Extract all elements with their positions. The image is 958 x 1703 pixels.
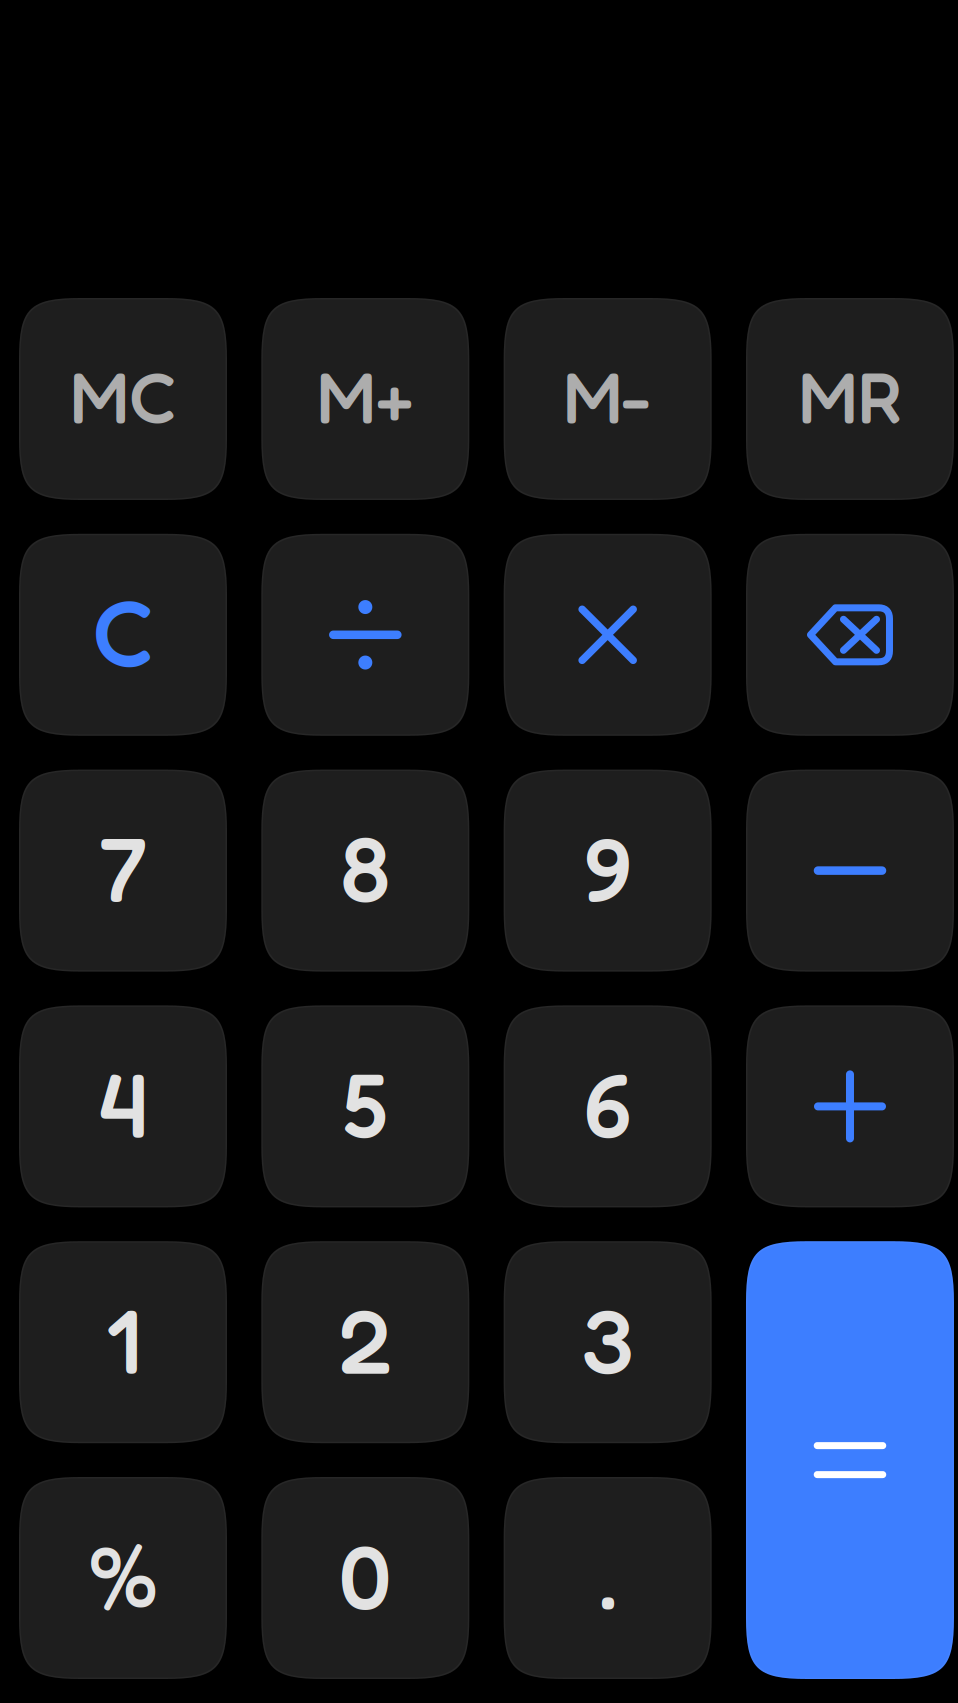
staticText: 8	[340, 813, 390, 922]
staticText: M+	[317, 352, 414, 439]
staticText: 1	[105, 1284, 140, 1394]
button[interactable]: %	[19, 1477, 227, 1679]
staticText: C	[92, 575, 153, 688]
button[interactable]: Plus	[746, 1005, 954, 1207]
button[interactable]: Multiply	[504, 534, 712, 736]
button[interactable]: 4	[19, 1005, 227, 1207]
button[interactable]: Minus	[746, 770, 954, 972]
staticText: MR	[798, 352, 901, 439]
button[interactable]: MR	[746, 298, 954, 500]
staticText: %	[88, 1523, 157, 1627]
button[interactable]: Divide	[261, 534, 469, 736]
button[interactable]: 1	[19, 1241, 227, 1443]
staticText: 0	[339, 1520, 392, 1630]
button[interactable]: Equals	[746, 1241, 954, 1679]
button[interactable]: M+	[261, 298, 469, 500]
staticText: 7	[98, 813, 147, 922]
staticText: 9	[584, 813, 632, 922]
staticText: 4	[98, 1048, 148, 1158]
button[interactable]: Backspace	[746, 534, 954, 736]
staticText: M-	[563, 352, 652, 439]
button[interactable]: .	[504, 1477, 712, 1679]
staticText: 5	[342, 1048, 388, 1158]
button[interactable]: 6	[504, 1005, 712, 1207]
staticText: 2	[339, 1284, 392, 1394]
button[interactable]: 2	[261, 1241, 469, 1443]
staticText: 3	[581, 1284, 634, 1394]
button[interactable]: M-	[504, 298, 712, 500]
button[interactable]: 0	[261, 1477, 469, 1679]
button[interactable]: 9	[504, 770, 712, 972]
staticText: .	[598, 1520, 617, 1630]
button[interactable]: C	[19, 534, 227, 736]
button[interactable]: MC	[19, 298, 227, 500]
staticText: MC	[70, 352, 176, 439]
button[interactable]: 3	[504, 1241, 712, 1443]
button[interactable]: 5	[261, 1005, 469, 1207]
button[interactable]: 7	[19, 770, 227, 972]
staticText: 6	[584, 1048, 632, 1158]
button[interactable]: 8	[261, 770, 469, 972]
